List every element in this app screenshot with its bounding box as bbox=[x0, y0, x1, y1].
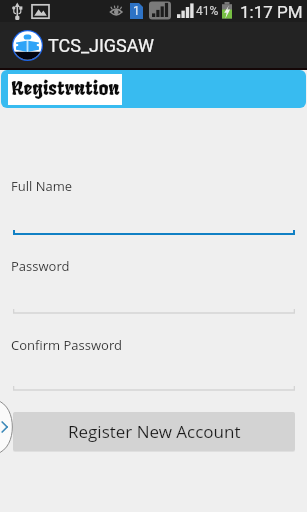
staticText: Registration bbox=[11, 76, 120, 100]
button[interactable]: Full Name bbox=[5, 170, 301, 238]
button[interactable]: Open navigation drawer bbox=[0, 399, 13, 455]
staticText: Confirm Password bbox=[11, 336, 122, 354]
staticText: 1 bbox=[133, 4, 140, 18]
button[interactable]: Confirm Password bbox=[5, 329, 301, 394]
staticText: 1:17 PM bbox=[240, 2, 303, 22]
staticText: Register New Account bbox=[68, 420, 241, 443]
staticText: Password bbox=[11, 257, 70, 275]
staticText: TCS_JIGSAW bbox=[48, 35, 154, 56]
button[interactable]: Register New Account bbox=[13, 412, 295, 451]
button[interactable]: Password bbox=[5, 250, 301, 317]
staticText: 41% bbox=[196, 4, 219, 18]
staticText: Full Name bbox=[11, 177, 73, 195]
